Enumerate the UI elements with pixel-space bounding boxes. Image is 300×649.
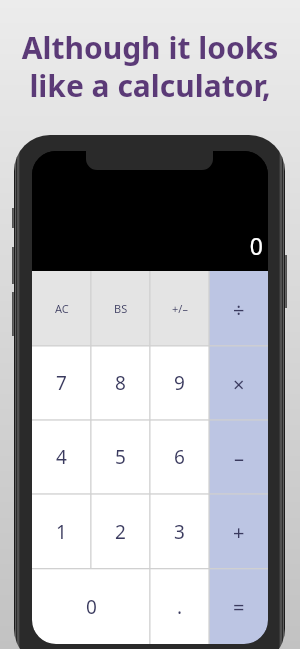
button[interactable]: 9 [150,346,209,420]
staticText: 5 [115,444,126,470]
button[interactable]: AC [32,271,91,346]
staticText: Although it looks like a calculator, [0,27,300,106]
button[interactable]: 0 [32,569,150,644]
button[interactable]: – [209,420,268,494]
staticText: 0 [239,230,263,261]
button[interactable]: 8 [91,346,150,420]
staticText: 9 [174,370,185,396]
staticText: 6 [174,444,185,470]
staticText: . [177,594,183,620]
staticText: 4 [56,444,67,470]
button[interactable]: 2 [91,494,150,569]
button[interactable]: BS [91,271,150,346]
staticText: 8 [115,370,126,396]
staticText: AC [55,301,69,316]
button[interactable]: 5 [91,420,150,494]
staticText: ÷ [233,296,245,323]
button[interactable]: = [209,569,268,644]
staticText: = [233,594,245,621]
staticText: × [233,371,245,398]
staticText: 2 [115,519,126,545]
staticText: BS [114,301,128,316]
staticText: 7 [56,370,67,396]
button[interactable]: 1 [32,494,91,569]
staticText: + [233,519,245,546]
button[interactable]: ÷ [209,271,268,346]
button[interactable]: 4 [32,420,91,494]
staticText: 1 [56,519,67,545]
button[interactable]: 6 [150,420,209,494]
button[interactable]: + [209,494,268,569]
button[interactable]: . [150,569,209,644]
button[interactable]: × [209,346,268,420]
staticText: 3 [174,519,185,545]
staticText: +/– [172,301,188,316]
button[interactable]: +/– [150,271,209,346]
staticText: – [234,445,244,472]
button[interactable]: 3 [150,494,209,569]
button[interactable]: 7 [32,346,91,420]
staticText: 0 [86,594,97,620]
